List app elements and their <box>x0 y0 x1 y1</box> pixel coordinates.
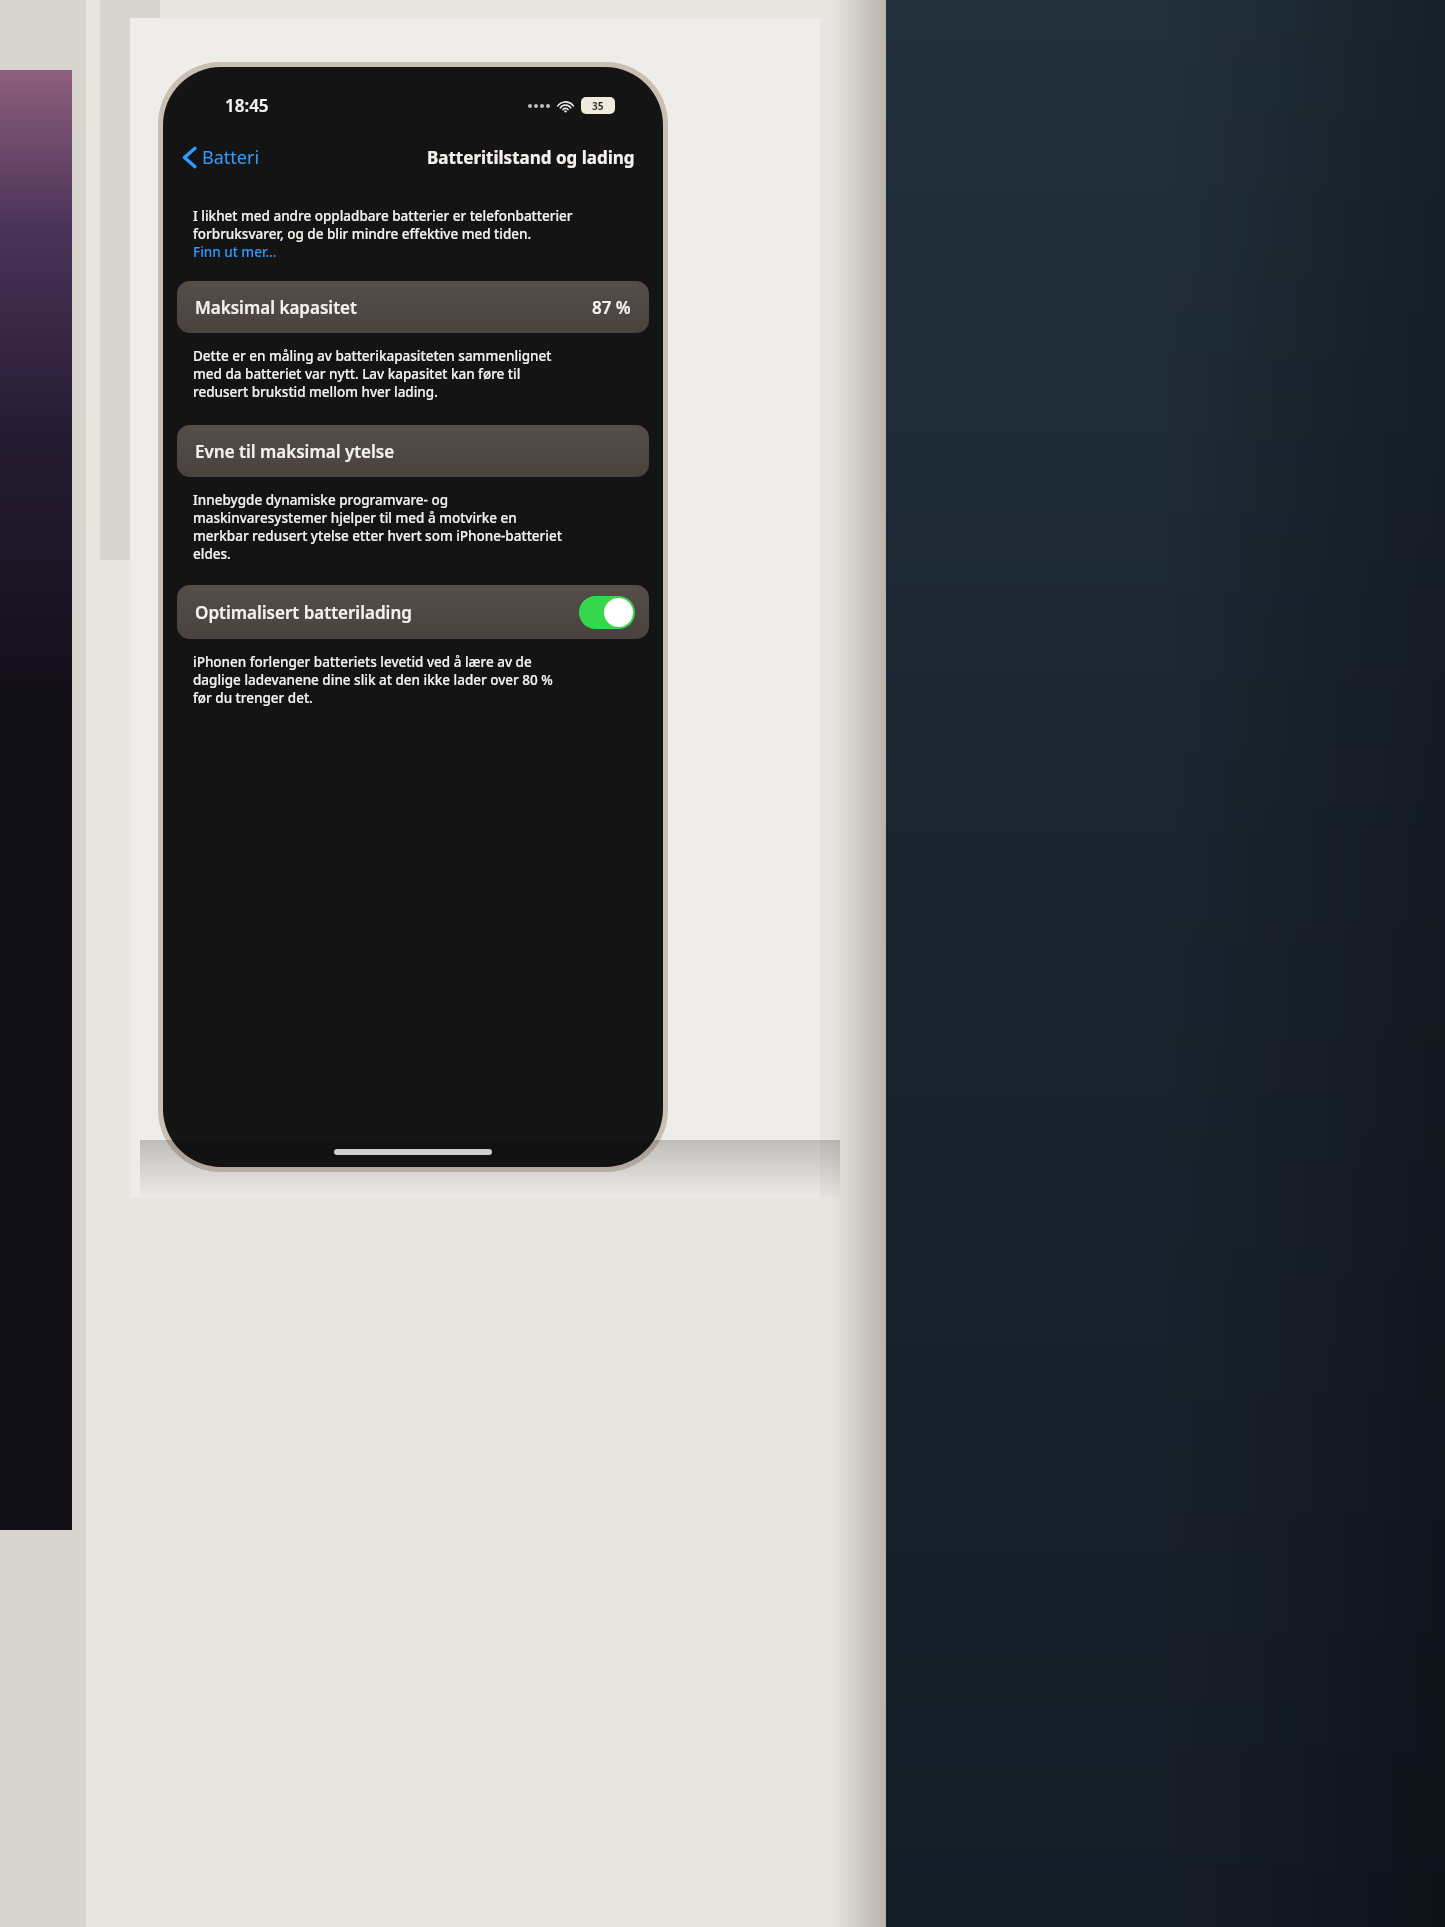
button[interactable]: Evne til maksimal ytelse <box>177 425 649 477</box>
staticText: Innebygde dynamiske programvare- og mask… <box>193 491 562 563</box>
staticText: Batteritilstand og lading <box>427 146 635 169</box>
staticText: 87 % <box>592 296 631 319</box>
staticText: Evne til maksimal ytelse <box>195 440 395 463</box>
staticText: Batteri <box>202 145 260 170</box>
button[interactable]: Finn ut mer... <box>193 243 277 261</box>
staticText: 35 <box>592 99 604 113</box>
staticText: Dette er en måling av batterikapasiteten… <box>193 347 552 401</box>
button[interactable]: Batteri <box>177 141 266 174</box>
staticText: I likhet med andre oppladbare batterier … <box>193 207 573 243</box>
button[interactable]: Optimalisert batterilading på <box>579 596 635 629</box>
staticText: Optimalisert batterilading <box>195 601 412 624</box>
button[interactable]: Optimalisert batterilading <box>177 585 649 639</box>
button[interactable]: Maksimal kapasitet <box>177 281 649 333</box>
staticText: 18:45 <box>225 94 269 117</box>
staticText: Maksimal kapasitet <box>195 296 357 319</box>
staticText: iPhonen forlenger batteriets levetid ved… <box>193 653 553 707</box>
